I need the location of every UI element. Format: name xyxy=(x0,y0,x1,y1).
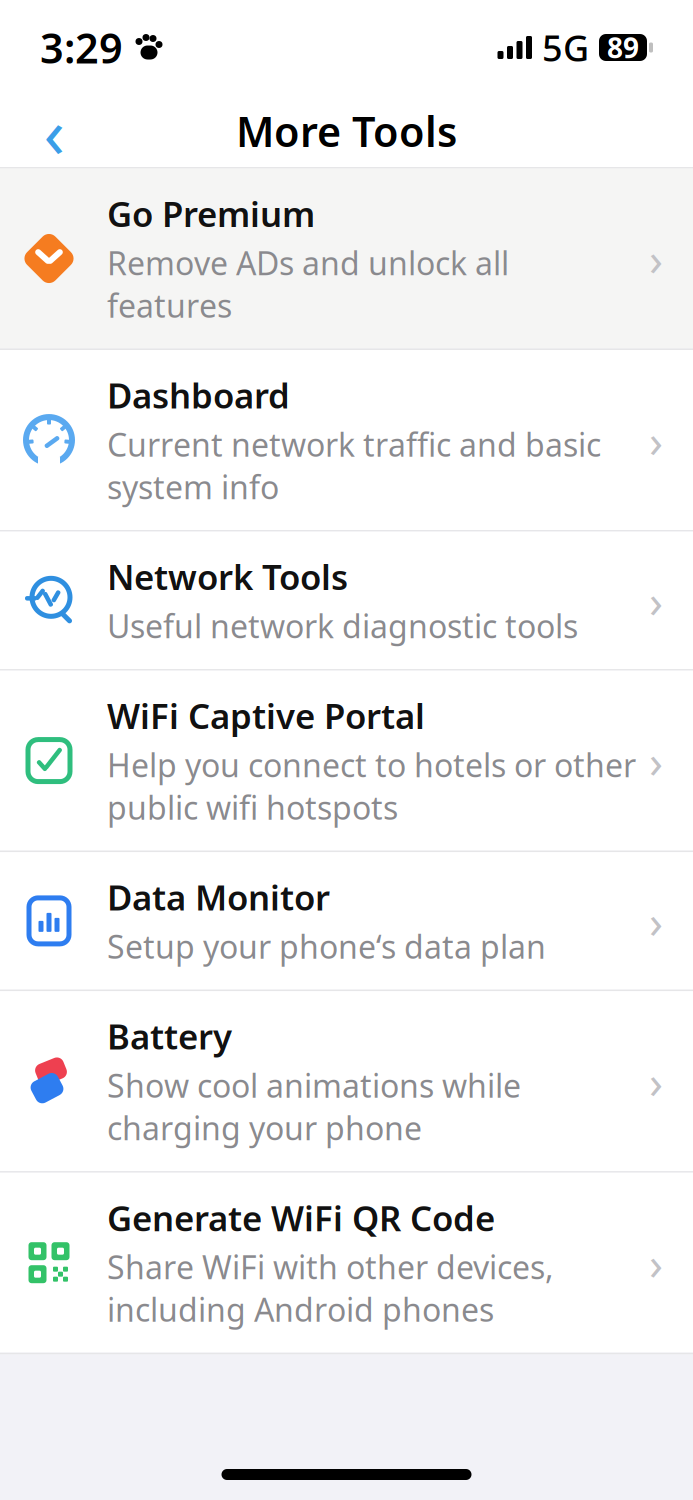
staticText: More Tools xyxy=(236,104,457,158)
staticText: › xyxy=(649,570,663,630)
staticText: › xyxy=(649,1051,663,1111)
staticText: 5G xyxy=(542,24,589,71)
staticText: Share WiFi with other devices, including… xyxy=(107,1246,554,1331)
button[interactable]: Battery xyxy=(0,991,693,1171)
button[interactable]: WiFi Captive Portal xyxy=(0,671,693,851)
staticText: Show cool animations while charging your… xyxy=(107,1064,521,1149)
staticText: Generate WiFi QR Code xyxy=(107,1195,495,1241)
staticText: › xyxy=(649,228,663,289)
staticText: Go Premium xyxy=(107,190,315,236)
staticText: Data Monitor xyxy=(107,874,330,920)
staticText: › xyxy=(649,410,663,470)
staticText: › xyxy=(649,1233,663,1293)
staticText: Current network traffic and basic system… xyxy=(107,423,601,508)
staticText: Remove ADs and unlock all features xyxy=(107,241,509,326)
staticText: 3:29 xyxy=(40,20,123,75)
staticText: ‹ xyxy=(43,85,64,177)
staticText: Setup your phone‘s data plan xyxy=(107,925,546,968)
button[interactable]: Back xyxy=(24,101,84,161)
staticText: Help you connect to hotels or other publ… xyxy=(107,744,636,829)
staticText: 89 xyxy=(607,29,639,66)
staticText: › xyxy=(649,730,663,791)
staticText: Dashboard xyxy=(107,372,290,418)
staticText: › xyxy=(649,891,663,951)
staticText: Battery xyxy=(107,1013,232,1059)
button[interactable]: Dashboard xyxy=(0,350,693,530)
button[interactable]: Go Premium xyxy=(0,168,693,348)
staticText: Network Tools xyxy=(107,554,348,600)
button[interactable]: Network Tools xyxy=(0,532,693,669)
staticText: WiFi Captive Portal xyxy=(107,693,425,739)
button[interactable]: Generate WiFi QR Code xyxy=(0,1173,693,1353)
button[interactable]: Data Monitor xyxy=(0,852,693,990)
staticText: Useful network diagnostic tools xyxy=(107,605,578,647)
